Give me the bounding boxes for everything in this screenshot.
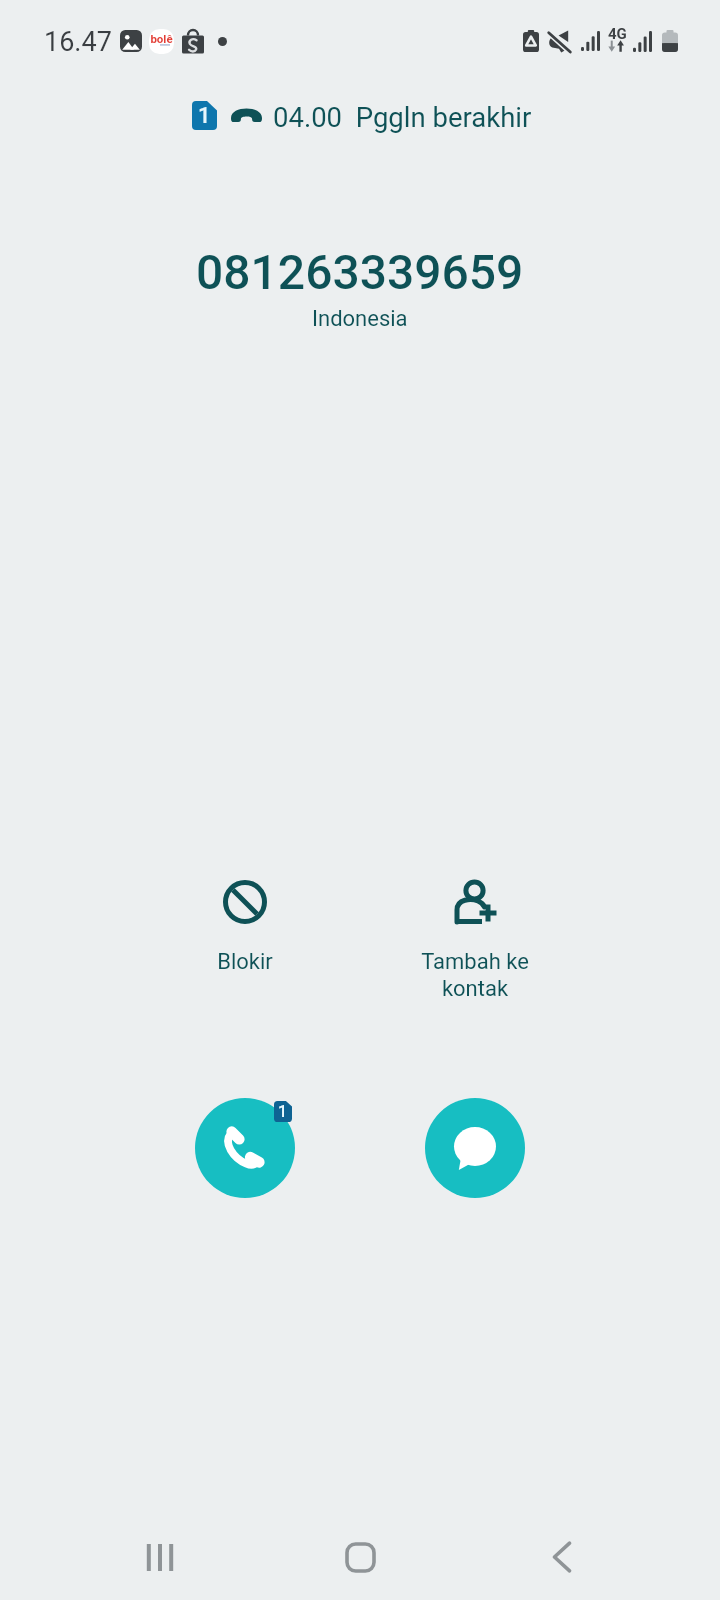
staticText: 04.00 Pggln berakhir <box>273 101 532 133</box>
staticText: 1 <box>198 103 211 129</box>
staticText: Indonesia <box>312 306 408 332</box>
button[interactable]: Back <box>522 1517 602 1597</box>
staticText: 081263339659 <box>196 244 524 300</box>
button[interactable]: Tambah ke kontak <box>395 866 555 1010</box>
button[interactable]: Recents <box>120 1517 200 1597</box>
staticText: Blokir <box>165 949 325 975</box>
button[interactable]: Call <box>195 1098 295 1198</box>
staticText: 16.47 <box>44 26 112 58</box>
staticText: 1 <box>278 1102 288 1121</box>
staticText: Tambah ke kontak <box>395 949 555 1001</box>
staticText: 4G <box>608 25 627 43</box>
button[interactable]: Home <box>320 1517 400 1597</box>
button[interactable]: Blokir <box>165 866 325 984</box>
staticText: bolê <box>149 32 174 45</box>
button[interactable]: Message <box>425 1098 525 1198</box>
